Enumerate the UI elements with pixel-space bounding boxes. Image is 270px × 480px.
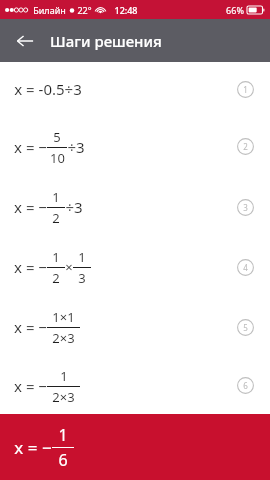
staticText: 3 (78, 269, 86, 287)
staticText: 2 (52, 269, 60, 287)
staticText: 2×3 (52, 329, 75, 347)
staticText: x = − (14, 257, 47, 277)
button[interactable]: x = − (0, 116, 270, 177)
staticText: 1 (52, 188, 60, 206)
staticText: 6 (58, 449, 68, 470)
staticText: x = − (14, 376, 47, 396)
staticText: 2 (243, 141, 248, 152)
staticText: Шаги решения (50, 31, 162, 51)
staticText: ÷3 (65, 197, 83, 217)
button[interactable]: x = -0.5÷3 (0, 62, 270, 116)
staticText: 1 (58, 424, 68, 446)
button[interactable]: x = − (0, 297, 270, 357)
staticText: 10 (50, 149, 65, 167)
staticText: x = − (14, 197, 47, 217)
staticText: 1 (78, 248, 86, 266)
staticText: 22° (77, 4, 92, 16)
button[interactable]: x = − (0, 414, 270, 480)
staticText: 1×1 (52, 308, 75, 326)
button[interactable]: x = − (0, 237, 270, 297)
button[interactable]: x = − (0, 177, 270, 237)
staticText: 1 (60, 367, 68, 385)
button[interactable]: Back (8, 24, 42, 58)
staticText: 66% (226, 4, 244, 16)
staticText: ÷3 (67, 137, 85, 157)
staticText: 2 (52, 209, 60, 227)
staticText: x = -0.5÷3 (14, 79, 82, 99)
staticText: x = − (14, 436, 52, 459)
staticText: 1 (52, 248, 60, 266)
staticText: 12:48 (114, 4, 138, 16)
staticText: 5 (53, 128, 61, 146)
staticText: 2×3 (52, 388, 75, 406)
staticText: 1 (243, 84, 248, 95)
staticText: 6 (243, 380, 248, 391)
staticText: x = − (14, 137, 47, 157)
staticText: 5 (243, 322, 248, 333)
button[interactable]: x = − (0, 357, 270, 414)
staticText: 4 (243, 262, 248, 273)
staticText: x = − (14, 317, 47, 337)
staticText: × (65, 258, 73, 276)
staticText: 3 (243, 202, 248, 213)
staticText: Билайн (33, 4, 66, 16)
